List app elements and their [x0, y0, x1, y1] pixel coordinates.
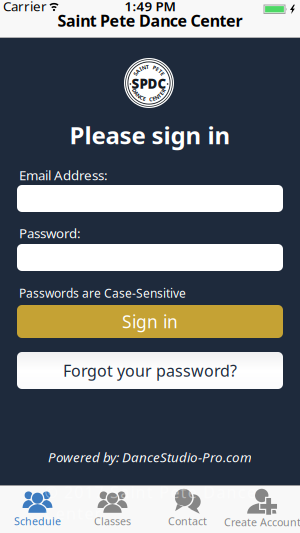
staticText: Forgot your password? — [63, 360, 237, 381]
staticText: T — [146, 63, 149, 70]
staticText: E — [160, 90, 163, 97]
staticText: A — [136, 68, 140, 75]
staticText: Email Address: — [19, 166, 108, 184]
staticText: E — [161, 70, 164, 77]
staticText: Create Account — [224, 515, 300, 529]
staticText: E — [152, 95, 155, 102]
staticText: D — [133, 87, 137, 94]
button[interactable]: Password — [17, 244, 283, 271]
button[interactable]: Classes — [75, 486, 150, 532]
staticText: T — [158, 92, 161, 99]
staticText: I — [140, 65, 142, 73]
button[interactable]: Create Account — [225, 486, 300, 532]
staticText: N — [142, 64, 146, 71]
staticText: Schedule — [14, 514, 61, 528]
button[interactable]: Forgot your password? — [17, 352, 283, 389]
staticText: A — [134, 90, 138, 97]
button[interactable]: Schedule — [0, 486, 75, 532]
staticText: Contact — [168, 514, 207, 528]
staticText: S — [134, 70, 137, 77]
staticText: Sign in — [122, 310, 178, 333]
staticText: C — [149, 96, 152, 103]
button[interactable]: Powered by: DanceStudio-Pro.com — [48, 448, 252, 466]
staticText: E — [143, 95, 146, 102]
staticText: E — [156, 65, 159, 73]
staticText: SPDC — [131, 75, 166, 92]
staticText: Password: — [19, 224, 81, 242]
staticText: P — [153, 64, 156, 71]
staticText: Carrier — [3, 0, 47, 15]
staticText: Classes — [94, 514, 131, 528]
staticText: Powered by: DanceStudio-Pro.com — [48, 448, 252, 466]
staticText: C — [140, 94, 143, 101]
staticText: N — [155, 94, 159, 101]
staticText: R — [162, 87, 165, 94]
staticText: Please sign in — [69, 119, 230, 151]
staticText: 1:49 PM — [124, 0, 175, 15]
button[interactable]: Contact — [150, 486, 225, 532]
staticText: T — [159, 68, 162, 75]
button[interactable]: Sign in — [17, 305, 283, 338]
staticText: © 2017 Saint Pete Dance Center — [45, 481, 300, 503]
button[interactable]: Email Address — [17, 185, 283, 212]
staticText: Saint Pete Dance Center — [57, 10, 243, 31]
staticText: N — [137, 92, 141, 99]
staticText: Passwords are Case-Sensitive — [19, 285, 186, 301]
